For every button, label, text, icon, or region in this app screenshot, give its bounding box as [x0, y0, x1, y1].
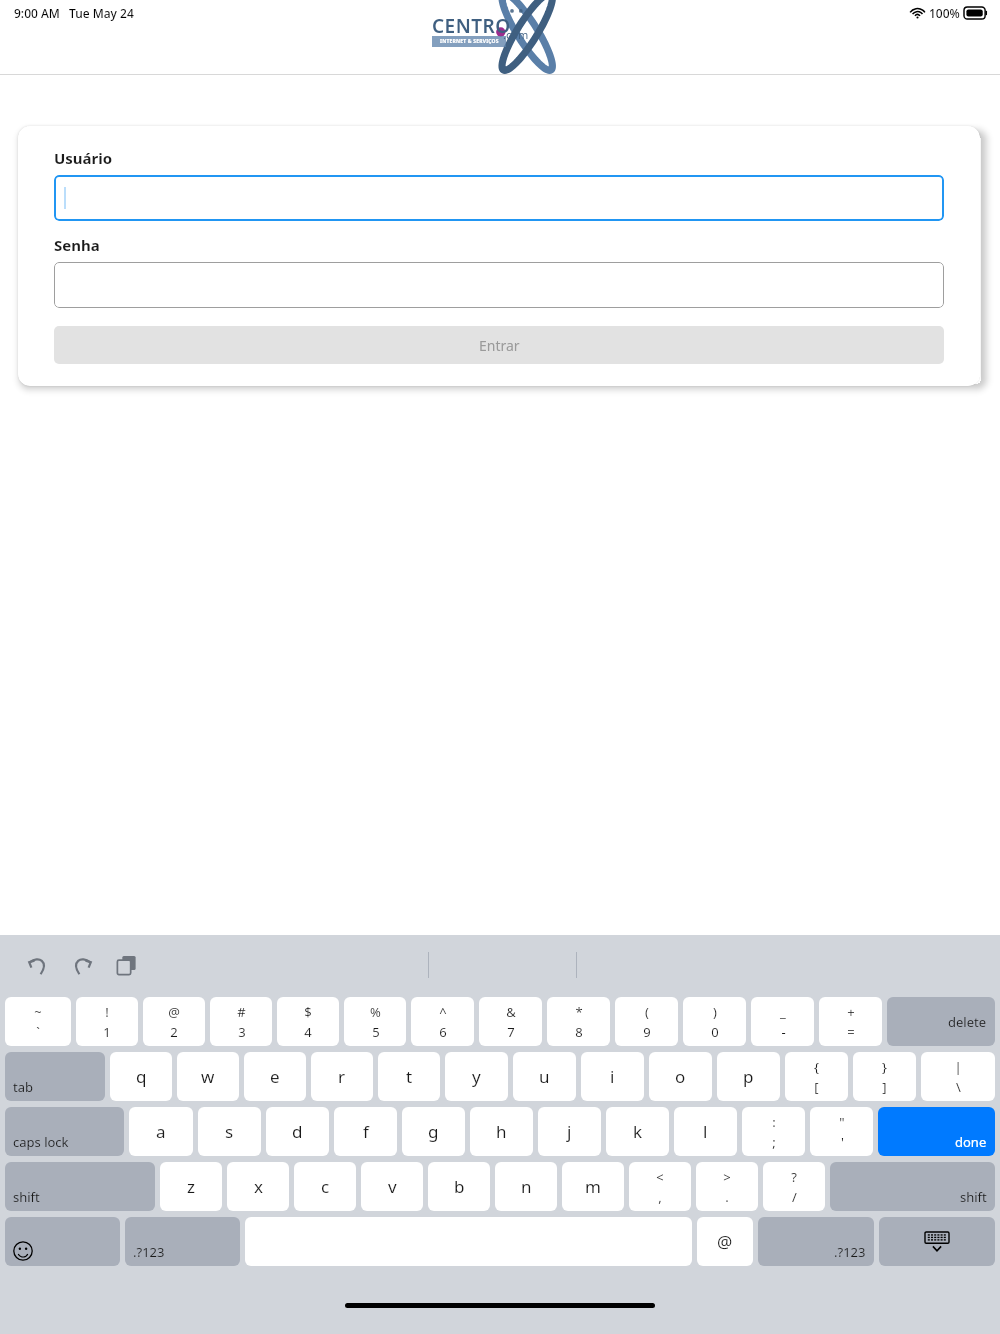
staticText: 4 [304, 1023, 312, 1041]
button[interactable]: c [294, 1162, 356, 1211]
button[interactable]: j [538, 1107, 601, 1156]
staticText: ( [645, 1003, 649, 1021]
staticText: 1 [103, 1023, 111, 1041]
staticText: { [814, 1058, 819, 1076]
button[interactable]: " [810, 1107, 873, 1156]
staticText: , [658, 1188, 662, 1206]
staticText: k [633, 1120, 643, 1143]
button[interactable]: delete [887, 997, 995, 1046]
button[interactable]: .?123 [125, 1217, 240, 1266]
button[interactable]: > [696, 1162, 758, 1211]
staticText: ] [882, 1078, 887, 1096]
button[interactable]: } [853, 1052, 916, 1101]
button[interactable]: { [785, 1052, 848, 1101]
staticText: w [201, 1065, 215, 1088]
staticText: s [225, 1120, 234, 1143]
button[interactable]: s [198, 1107, 261, 1156]
button[interactable]: w [177, 1052, 239, 1101]
button[interactable]: Redo [62, 945, 102, 985]
button[interactable]: ~ [5, 997, 71, 1046]
button[interactable]: shift [830, 1162, 995, 1211]
button[interactable]: ! [76, 997, 138, 1046]
button[interactable]: e [244, 1052, 306, 1101]
staticText: .?123 [834, 1243, 866, 1261]
button[interactable]: d [266, 1107, 329, 1156]
button[interactable]: Emoji [5, 1217, 120, 1266]
staticText: - [781, 1023, 786, 1041]
staticText: CENTRO [432, 13, 511, 39]
button[interactable]: # [210, 997, 272, 1046]
button[interactable]: ( [615, 997, 678, 1046]
button[interactable]: + [819, 997, 882, 1046]
button[interactable]: k [606, 1107, 669, 1156]
button[interactable]: g [402, 1107, 465, 1156]
button[interactable]: ? [763, 1162, 825, 1211]
button[interactable]: y [445, 1052, 508, 1101]
staticText: n [521, 1175, 532, 1198]
button[interactable]: p [717, 1052, 780, 1101]
staticText: ! [105, 1003, 109, 1021]
button[interactable]: m [562, 1162, 624, 1211]
staticText: o [675, 1065, 686, 1088]
button[interactable]: ^ [411, 997, 474, 1046]
button[interactable]: Paste [106, 945, 146, 985]
staticText: e [270, 1065, 280, 1088]
staticText: shift [960, 1188, 987, 1206]
button[interactable]: q [110, 1052, 172, 1101]
button[interactable]: v [361, 1162, 423, 1211]
button[interactable]: caps lock [5, 1107, 124, 1156]
button[interactable]: o [649, 1052, 712, 1101]
button[interactable]: l [674, 1107, 737, 1156]
button[interactable]: done [878, 1107, 995, 1156]
staticText: Entrar [479, 336, 520, 355]
staticText: 5 [372, 1023, 380, 1041]
button[interactable]: t [378, 1052, 440, 1101]
button[interactable]: i [581, 1052, 644, 1101]
staticText: > [723, 1168, 731, 1186]
button[interactable]: * [547, 997, 610, 1046]
staticText: 0 [711, 1023, 719, 1041]
staticText: : [772, 1113, 776, 1131]
staticText: \ [956, 1078, 961, 1096]
staticText: * [575, 1003, 583, 1021]
staticText: l [703, 1120, 708, 1143]
button[interactable]: Undo [18, 945, 58, 985]
button[interactable] [54, 175, 944, 221]
button[interactable]: n [495, 1162, 557, 1211]
staticText: Tue May 24 [69, 5, 134, 21]
staticText: ' [841, 1133, 844, 1151]
button[interactable]: r [311, 1052, 373, 1101]
button[interactable]: < [629, 1162, 691, 1211]
button[interactable]: _ [751, 997, 814, 1046]
button[interactable]: shift [5, 1162, 155, 1211]
button[interactable]: x [227, 1162, 289, 1211]
staticText: ; [772, 1133, 776, 1151]
staticText: q [136, 1065, 147, 1088]
button[interactable]: a [129, 1107, 193, 1156]
button[interactable]: % [344, 997, 406, 1046]
button[interactable]: tab [5, 1052, 105, 1101]
button[interactable]: h [470, 1107, 533, 1156]
staticText: t [406, 1065, 413, 1088]
staticText: caps lock [13, 1133, 69, 1151]
button[interactable]: | [921, 1052, 995, 1101]
staticText: ` [36, 1023, 40, 1041]
button[interactable]: $ [277, 997, 339, 1046]
staticText: z [187, 1175, 195, 1198]
button[interactable]: Entrar [54, 326, 944, 364]
staticText: p [743, 1065, 754, 1088]
button[interactable]: @ [143, 997, 205, 1046]
button[interactable]: Hide keyboard [879, 1217, 995, 1266]
staticText: d [292, 1120, 303, 1143]
button[interactable]: u [513, 1052, 576, 1101]
button[interactable]: z [160, 1162, 222, 1211]
button[interactable]: .?123 [758, 1217, 874, 1266]
button[interactable]: : [742, 1107, 805, 1156]
button[interactable]: & [479, 997, 542, 1046]
button[interactable]: ) [683, 997, 746, 1046]
button[interactable]: f [334, 1107, 397, 1156]
button[interactable]: b [428, 1162, 490, 1211]
button[interactable]: @ [697, 1217, 753, 1266]
button[interactable] [54, 262, 944, 308]
